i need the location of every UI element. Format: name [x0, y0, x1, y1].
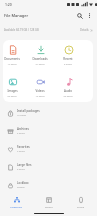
- staticText: File Manager: [4, 13, 29, 18]
- button[interactable]: Images: [0, 76, 25, 98]
- staticText: 3 items: [17, 150, 25, 153]
- staticText: Recent: [63, 57, 73, 61]
- staticText: Details: [80, 28, 89, 32]
- staticText: 52 items: [7, 95, 17, 98]
- button[interactable]: Categories: [0, 194, 33, 210]
- button[interactable]: Large files: [3, 158, 94, 176]
- staticText: 12 items: [17, 114, 27, 117]
- staticText: Images: [7, 89, 18, 93]
- button[interactable]: Lockbox: [3, 176, 94, 194]
- staticText: Categories: [10, 205, 23, 208]
- staticText: Phone: [77, 205, 85, 208]
- button[interactable]: Recent: [55, 44, 81, 66]
- staticText: Install packages: [17, 109, 40, 113]
- staticText: Available 84.79 GB / 128 GB: [4, 28, 39, 32]
- staticText: 23 items: [63, 95, 73, 98]
- staticText: 8 items: [64, 63, 72, 66]
- button[interactable]: Search: [74, 10, 85, 21]
- staticText: Private: [17, 186, 25, 189]
- staticText: Videos: [35, 89, 45, 93]
- staticText: 1:20: [5, 2, 12, 7]
- staticText: Large files: [17, 163, 32, 167]
- button[interactable]: Favorites: [3, 140, 94, 158]
- button[interactable]: Downloads: [27, 44, 53, 66]
- staticText: 5 items: [17, 132, 25, 135]
- staticText: Downloads: [32, 57, 48, 61]
- staticText: Documents: [4, 57, 20, 61]
- staticText: Recent: [45, 205, 53, 208]
- button[interactable]: Audio: [55, 76, 81, 98]
- button[interactable]: Videos: [27, 76, 53, 98]
- button[interactable]: Install packages: [3, 104, 94, 122]
- staticText: 8 items: [17, 168, 25, 171]
- staticText: 31 items: [35, 63, 45, 66]
- button[interactable]: Documents: [0, 44, 25, 66]
- button[interactable]: Recent: [33, 194, 65, 210]
- staticText: 12 items: [35, 95, 45, 98]
- staticText: Lockbox: [17, 181, 29, 185]
- button[interactable]: Phone: [65, 194, 97, 210]
- staticText: Audio: [64, 89, 72, 93]
- button[interactable]: Details: [80, 28, 93, 32]
- button[interactable]: More options: [85, 11, 94, 20]
- staticText: Favorites: [17, 145, 30, 149]
- staticText: 17 items: [7, 63, 17, 66]
- staticText: Archives: [17, 127, 29, 131]
- button[interactable]: Archives: [3, 122, 94, 140]
